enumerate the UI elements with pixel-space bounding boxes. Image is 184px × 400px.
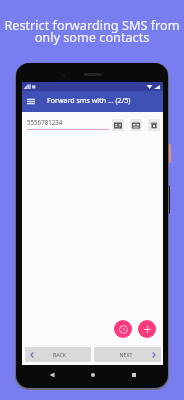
button[interactable]: Home [91,373,95,377]
staticText: Restrict forwarding SMS from only some c… [2,16,182,46]
staticText: Forward sms with ... (2/5) [47,95,131,105]
staticText: 5556781234 [27,118,63,126]
button[interactable]: Add from contacts [112,119,124,131]
staticText: NEXT [100,351,152,358]
button[interactable]: BACK [25,347,91,362]
button[interactable]: Add [138,320,156,338]
button[interactable]: Back [49,372,55,378]
button[interactable]: Menu [25,95,37,107]
button[interactable]: NEXT [94,347,161,362]
button[interactable]: History [114,320,132,338]
button[interactable]: Add from messages [130,119,142,131]
button[interactable]: Delete [148,119,160,131]
staticText: BACK [34,351,85,358]
